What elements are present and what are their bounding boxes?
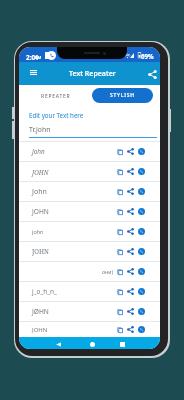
staticText: JOHN (32, 326, 48, 334)
button[interactable]: Share (125, 306, 136, 317)
button[interactable]: Copy (114, 246, 125, 257)
button[interactable]: Share (125, 146, 136, 157)
staticText: JOHN (32, 168, 49, 176)
staticText: JØHN (32, 307, 49, 316)
button[interactable]: Copy (114, 286, 125, 297)
button[interactable]: Send to WhatsApp (136, 324, 147, 335)
staticText: STYLISH (110, 92, 135, 99)
staticText: John (32, 147, 45, 156)
staticText: john (32, 228, 44, 235)
button[interactable]: Copy (114, 186, 125, 197)
button[interactable]: Share (125, 166, 136, 177)
button[interactable]: John (19, 182, 160, 201)
button[interactable]: Send to WhatsApp (136, 286, 147, 297)
staticText: AM (35, 55, 42, 60)
button[interactable]: Send to WhatsApp (136, 246, 147, 257)
button[interactable]: Share (125, 324, 136, 335)
button[interactable]: REPEATER (21, 88, 90, 104)
staticText: Tr.John (29, 125, 51, 134)
staticText: Edit your Text here (29, 111, 84, 119)
staticText: John (32, 187, 47, 197)
button[interactable]: Send to WhatsApp (136, 306, 147, 317)
button[interactable]: Share (125, 246, 136, 257)
staticText: они) (102, 268, 114, 275)
staticText: 69% (141, 52, 154, 60)
button[interactable]: Copy (114, 324, 125, 335)
button[interactable]: Send to WhatsApp (136, 146, 147, 157)
button[interactable]: Copy (114, 266, 125, 277)
staticText: JOHN (32, 207, 49, 216)
button[interactable]: STYLISH (92, 88, 153, 103)
button[interactable]: JØHN (19, 302, 160, 321)
button[interactable]: Send to WhatsApp (136, 186, 147, 197)
button[interactable]: Copy (114, 166, 125, 177)
button[interactable]: Recent apps (116, 338, 128, 349)
button[interactable]: Copy (114, 206, 125, 217)
staticText: JOHN (32, 247, 49, 256)
button[interactable]: Menu (27, 66, 40, 79)
button[interactable]: Back (52, 338, 64, 349)
button[interactable]: Copy (114, 226, 125, 237)
button[interactable]: John (19, 142, 160, 161)
button[interactable]: JOHN (19, 322, 160, 337)
button[interactable]: Send to WhatsApp (136, 166, 147, 177)
button[interactable]: JOHN (19, 162, 160, 181)
button[interactable]: j_o_h_n_ (19, 282, 160, 301)
button[interactable]: Send to WhatsApp (136, 226, 147, 237)
button[interactable]: Send to WhatsApp (136, 206, 147, 217)
staticText: REPEATER (41, 93, 71, 100)
staticText: Text Repeater (69, 68, 116, 78)
button[interactable]: Home (86, 338, 98, 349)
staticText: j_o_h_n_ (32, 287, 57, 296)
button[interactable]: JOHN (19, 202, 160, 221)
staticText: 2:01 (26, 53, 39, 62)
button[interactable]: Share (146, 68, 159, 81)
button[interactable]: JOHN (19, 242, 160, 261)
button[interactable]: john (19, 222, 160, 241)
button[interactable]: Share (125, 266, 136, 277)
button[interactable]: Send to WhatsApp (136, 266, 147, 277)
button[interactable]: они) (19, 262, 160, 281)
button[interactable]: Share (125, 226, 136, 237)
button[interactable]: Copy (114, 146, 125, 157)
button[interactable]: Share (125, 286, 136, 297)
button[interactable]: Copy (114, 306, 125, 317)
button[interactable]: Share (125, 186, 136, 197)
button[interactable]: Share (125, 206, 136, 217)
